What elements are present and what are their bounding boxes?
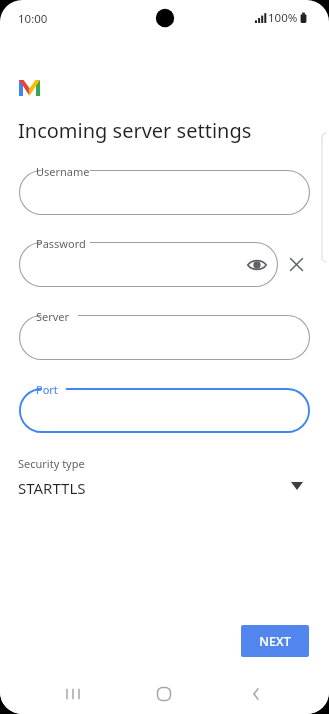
button[interactable]: Security type <box>13 450 316 506</box>
staticText: Password <box>36 236 86 251</box>
staticText: Port <box>36 382 58 397</box>
button[interactable]: Port <box>19 388 310 433</box>
staticText: NEXT <box>259 633 291 650</box>
staticText: 10:00 <box>18 11 48 27</box>
staticText: Incoming server settings <box>18 117 252 144</box>
staticText: STARTTLS <box>18 478 86 498</box>
staticText: Server <box>36 309 70 324</box>
button[interactable]: Clear password <box>285 253 308 276</box>
button[interactable]: Username <box>19 170 310 215</box>
button[interactable]: Back <box>246 684 266 704</box>
staticText: Security type <box>18 456 85 471</box>
button[interactable]: Show password <box>246 254 268 276</box>
button[interactable]: Password <box>19 242 278 287</box>
button[interactable]: Home <box>154 684 174 704</box>
staticText: 100% <box>268 10 298 26</box>
button[interactable]: Recents <box>63 684 83 704</box>
button[interactable]: NEXT <box>241 625 309 657</box>
staticText: Username <box>36 164 90 179</box>
button[interactable]: Server <box>19 315 310 360</box>
